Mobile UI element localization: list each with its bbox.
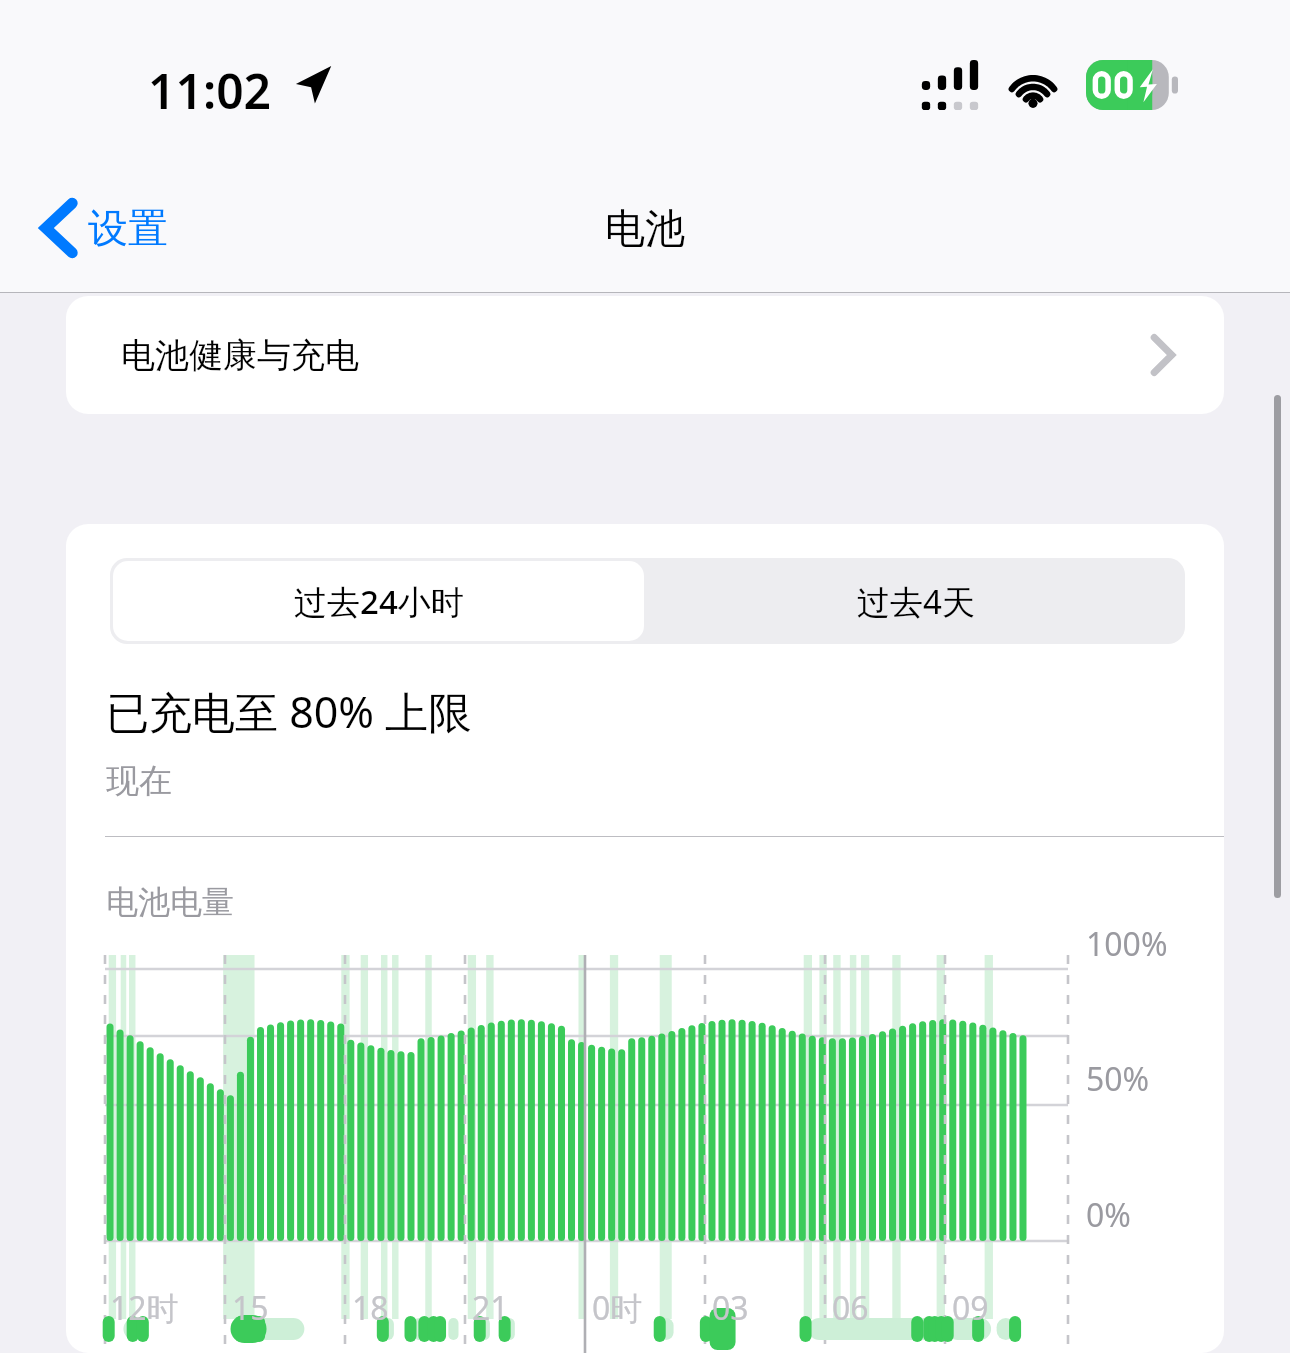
staticText: 现在 [106, 760, 172, 802]
staticText: 过去24小时 [294, 579, 464, 624]
staticText: 过去4天 [857, 579, 975, 624]
button[interactable]: 设置 [30, 184, 168, 272]
staticText: 03 [712, 1286, 749, 1330]
button[interactable]: 电池健康与充电 [66, 296, 1224, 414]
staticText: 0时 [592, 1286, 643, 1330]
other: Battery 80 percent charging [1086, 60, 1178, 110]
staticText: 电池健康与充电 [121, 334, 359, 377]
staticText: 已充电至 80% 上限 [106, 682, 472, 741]
other: Cellular signal [918, 60, 982, 110]
staticText: 100% [1086, 922, 1168, 966]
staticText: 09 [952, 1286, 989, 1330]
staticText: 0% [1086, 1193, 1131, 1237]
staticText: 18 [352, 1286, 389, 1330]
staticText: 15 [232, 1286, 269, 1330]
staticText: 11:02 [148, 58, 272, 123]
staticText: 50% [1086, 1057, 1150, 1101]
button[interactable]: 过去4天 [647, 558, 1185, 644]
staticText: 电池 [605, 203, 685, 253]
button[interactable]: 过去24小时 [110, 558, 647, 644]
staticText: 12时 [110, 1286, 179, 1330]
staticText: 06 [832, 1286, 869, 1330]
staticText: 设置 [88, 203, 168, 253]
staticText: 电池电量 [106, 882, 234, 922]
other: Wi-Fi [1004, 62, 1062, 108]
staticText: 21 [472, 1286, 509, 1330]
other: Location [294, 64, 332, 104]
